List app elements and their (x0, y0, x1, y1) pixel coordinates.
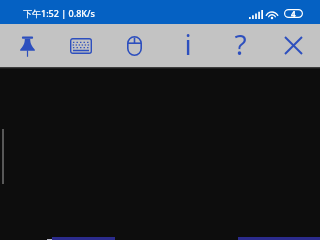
staticText: 下午1:52 | 0.8K/s (23, 7, 95, 19)
button[interactable]: Help (214, 24, 267, 67)
button[interactable]: Mouse (108, 24, 161, 67)
button[interactable]: Close (267, 24, 320, 67)
button[interactable]: Keyboard (54, 24, 108, 67)
staticText: i (184, 25, 192, 63)
button[interactable]: Info (161, 24, 214, 67)
button[interactable]: Pin (0, 24, 54, 67)
staticText: 4 (291, 8, 296, 19)
staticText: ? (234, 25, 247, 63)
